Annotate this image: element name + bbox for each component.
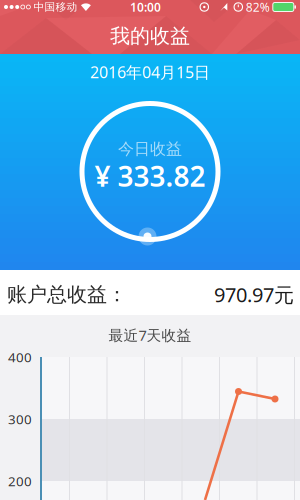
staticText: 400 bbox=[8, 348, 32, 366]
staticText: 今日收益 bbox=[118, 139, 182, 159]
staticText: 中国移动 bbox=[33, 0, 77, 13]
staticText: 300 bbox=[8, 410, 32, 428]
staticText: 200 bbox=[8, 472, 32, 490]
staticText: 账户总收益： bbox=[7, 282, 127, 307]
staticText: 970.97元 bbox=[214, 281, 294, 308]
staticText: 最近7天收益 bbox=[108, 325, 191, 345]
staticText: 我的收益 bbox=[110, 24, 190, 48]
staticText: 2016年04月15日 bbox=[90, 61, 210, 83]
button[interactable]: 账户总收益： bbox=[0, 270, 300, 315]
staticText: 82% bbox=[246, 0, 270, 15]
staticText: ¥ 333.82 bbox=[94, 157, 205, 195]
staticText: 10:00 bbox=[130, 0, 161, 15]
